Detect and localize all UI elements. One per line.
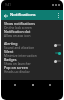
staticText: Silent <box>4 49 14 54</box>
staticText: On the lock screen <box>4 26 32 29</box>
button[interactable]: Notification dot <box>1 29 63 37</box>
staticText: Heads-up display <box>4 70 30 73</box>
button[interactable]: Badges <box>1 57 63 65</box>
staticText: Minimize interruption <box>4 54 37 57</box>
button[interactable]: Home <box>28 80 37 89</box>
button[interactable]: Back <box>1 11 10 20</box>
button[interactable]: Pop on screen <box>1 65 63 73</box>
staticText: Notification dot <box>4 29 31 34</box>
button[interactable]: Back <box>10 80 19 89</box>
button[interactable]: Silent <box>1 49 63 57</box>
button[interactable]: More options <box>54 11 63 20</box>
staticText: Allow on app icon <box>4 34 31 37</box>
staticText: Badges <box>4 57 17 62</box>
button[interactable]: Recents <box>45 80 54 89</box>
staticText: Show notifications <box>4 21 35 26</box>
staticText: Notifications <box>10 12 36 18</box>
button[interactable]: Show notifications <box>1 21 63 29</box>
staticText: Alerting <box>4 41 18 46</box>
staticText: Pop on screen <box>4 65 28 70</box>
staticText: 9:41 <box>5 3 11 7</box>
staticText: Show on launcher <box>4 62 31 65</box>
staticText: Sound and vibration <box>4 46 35 49</box>
button[interactable]: Alerting <box>1 41 63 49</box>
